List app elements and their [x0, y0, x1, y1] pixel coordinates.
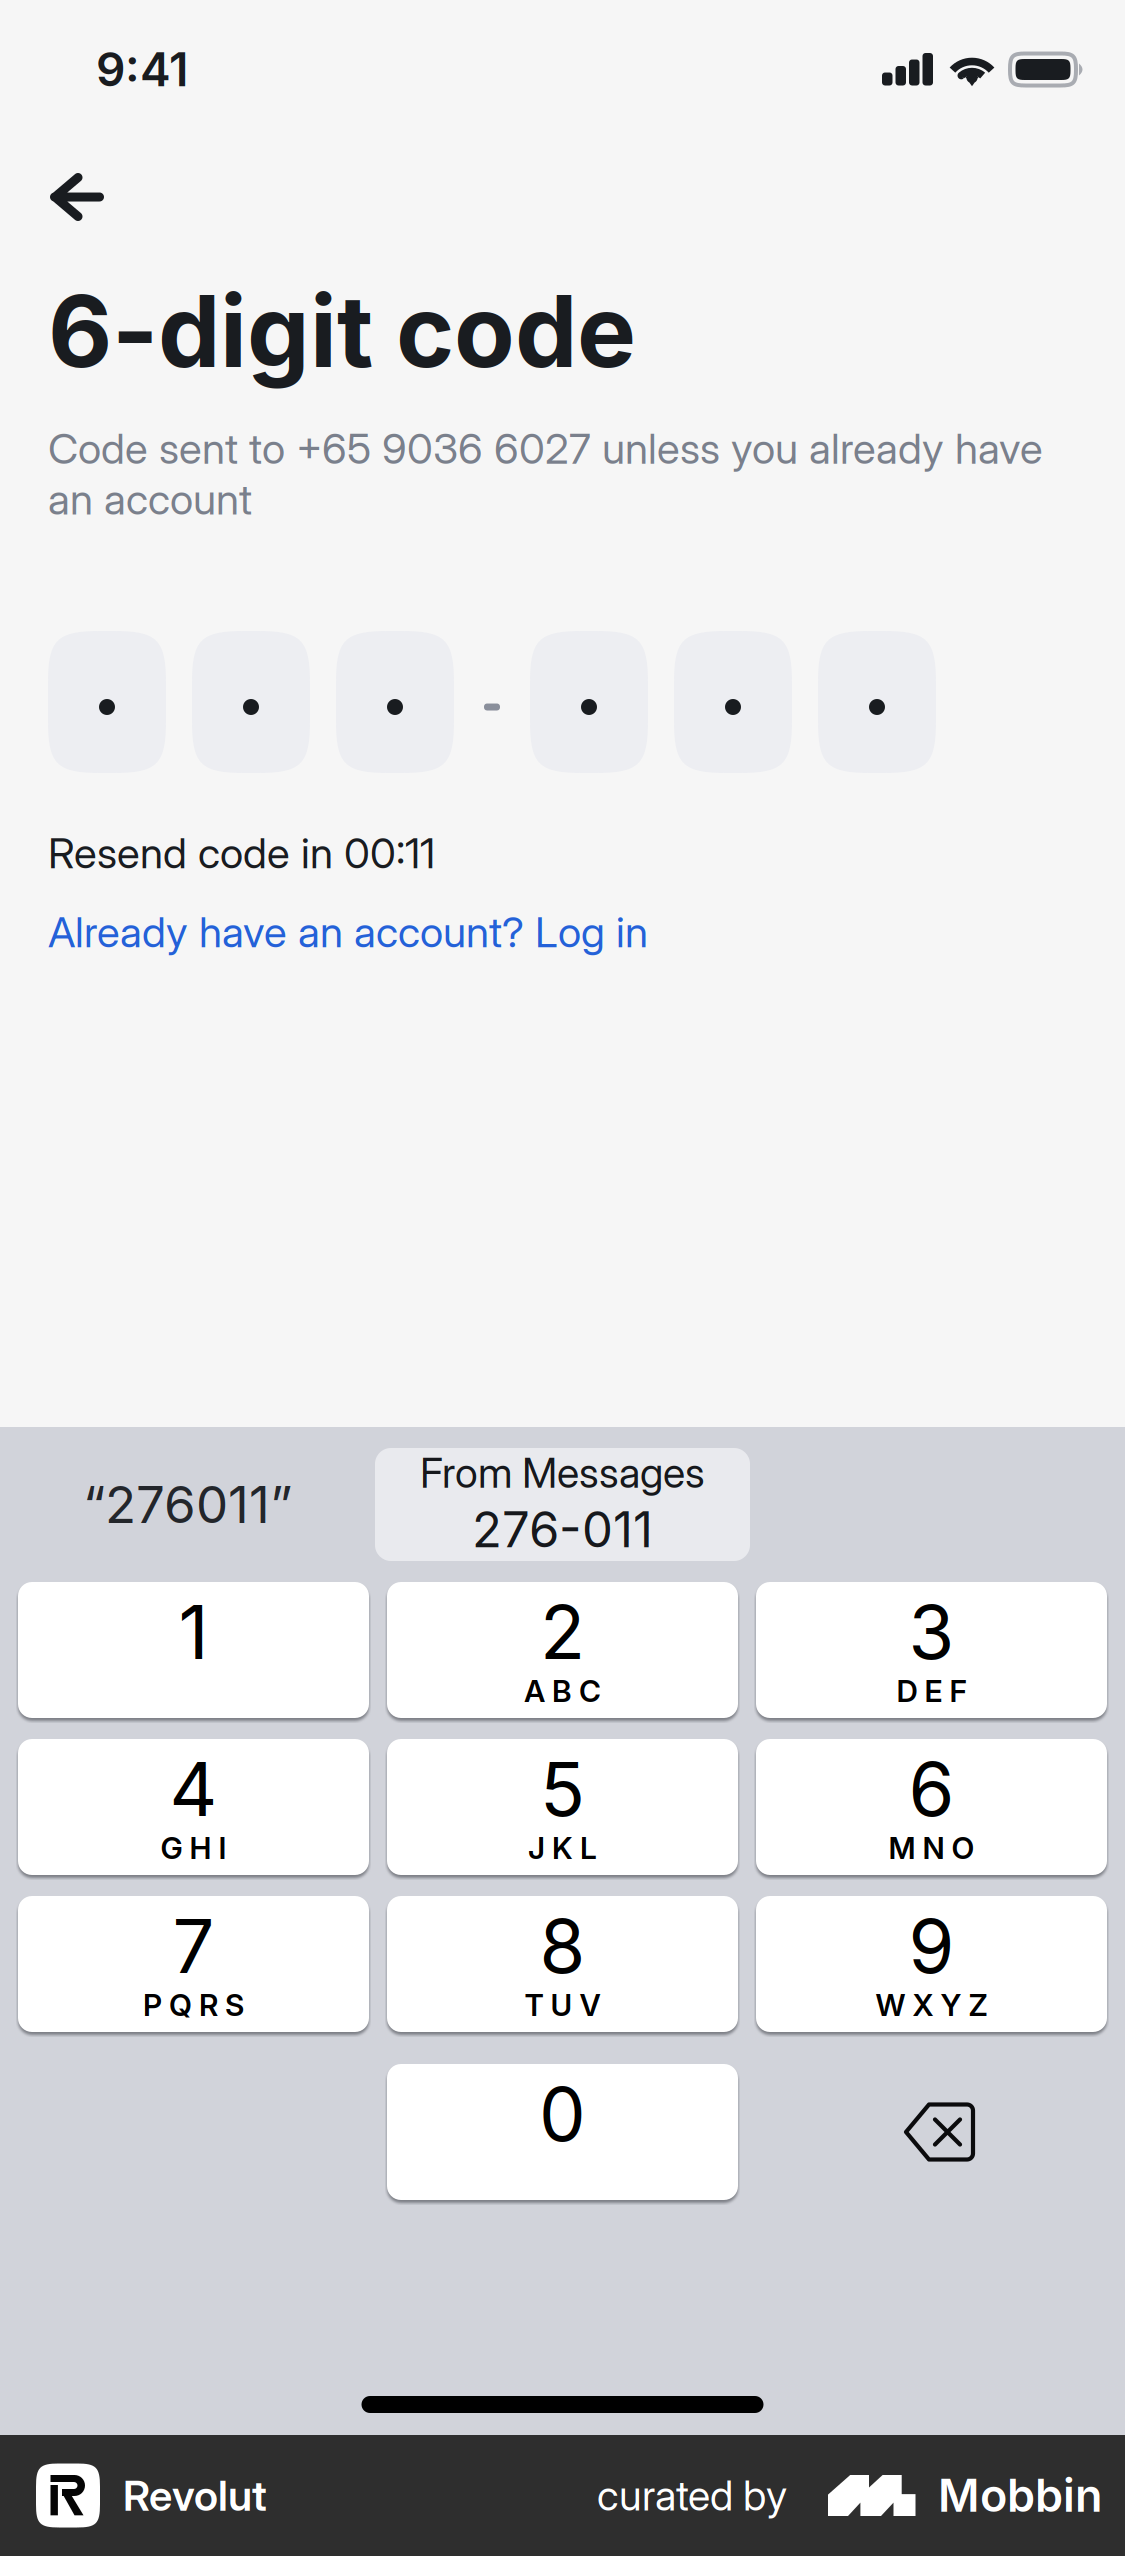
staticText: Code sent to +65 9036 6027 unless you al…	[48, 423, 1043, 525]
button[interactable]: 8	[387, 1896, 738, 2032]
button[interactable]: Delete	[756, 2064, 1107, 2200]
staticText: T U V	[524, 1987, 600, 2023]
staticText: G H I	[160, 1830, 226, 1866]
button[interactable]: 3	[756, 1582, 1107, 1718]
staticText: W X Y Z	[875, 1987, 987, 2023]
staticText: Revolut	[123, 2470, 267, 2521]
staticText: A B C	[524, 1673, 601, 1709]
staticText: Resend code in 00:11	[48, 828, 435, 878]
staticText: From Messages	[420, 1448, 705, 1498]
staticText: curated by	[597, 2471, 787, 2520]
staticText: 8	[539, 1901, 585, 1991]
button[interactable]: 2	[387, 1582, 738, 1718]
button[interactable]: 0	[387, 2064, 738, 2200]
staticText: P Q R S	[143, 1987, 244, 2023]
staticText: 7	[172, 1901, 214, 1991]
staticText: M N O	[888, 1830, 974, 1866]
staticText: 5	[540, 1744, 585, 1834]
staticText: 2	[540, 1587, 585, 1677]
button[interactable]: 7	[18, 1896, 369, 2032]
button[interactable]: Back	[22, 142, 132, 266]
staticText: “276011”	[83, 1474, 292, 1535]
button[interactable]: 6	[756, 1739, 1107, 1875]
button[interactable]: 9	[756, 1896, 1107, 2032]
staticText: 9:41	[96, 42, 188, 97]
button[interactable]: 5	[387, 1739, 738, 1875]
staticText: 6	[908, 1744, 954, 1834]
staticText: D E F	[896, 1673, 966, 1709]
staticText: 9	[908, 1901, 954, 1991]
staticText: 4	[169, 1744, 217, 1834]
staticText: 0	[539, 2069, 586, 2159]
button[interactable]: 1	[18, 1582, 369, 1718]
button[interactable]: Already have an account? Log in	[48, 903, 648, 961]
staticText: 6-digit code	[48, 271, 636, 391]
staticText: Already have an account? Log in	[48, 907, 648, 957]
staticText: 3	[908, 1587, 954, 1677]
staticText: J K L	[528, 1830, 597, 1866]
staticText: 276-011	[472, 1500, 653, 1559]
staticText: Mobbin	[938, 2468, 1103, 2523]
button[interactable]: 4	[18, 1739, 369, 1875]
staticText: 1	[178, 1587, 208, 1677]
